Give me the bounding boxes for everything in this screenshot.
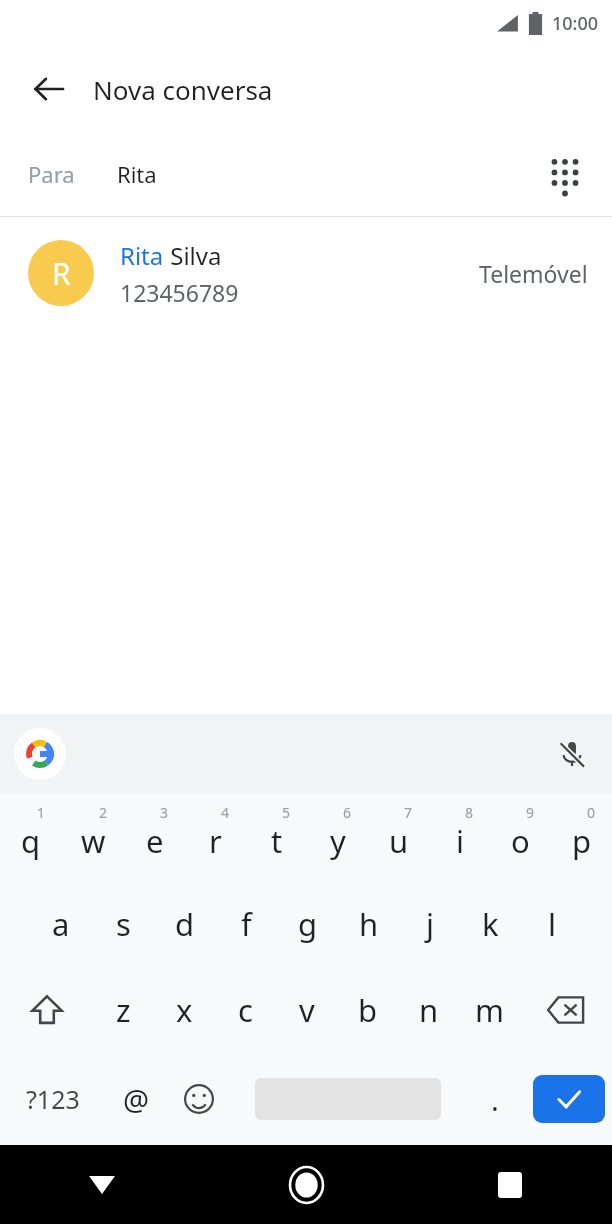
- button[interactable]: b: [337, 967, 398, 1053]
- staticText: g: [298, 903, 318, 945]
- staticText: 9: [526, 803, 535, 822]
- staticText: h: [359, 903, 379, 945]
- staticText: m: [475, 989, 504, 1031]
- button[interactable]: c: [215, 967, 276, 1053]
- staticText: 1: [37, 803, 46, 822]
- staticText: k: [482, 903, 499, 945]
- button[interactable]: Send: [526, 1053, 612, 1145]
- button[interactable]: 8: [429, 793, 490, 881]
- button[interactable]: d: [154, 881, 216, 967]
- staticText: d: [175, 903, 195, 945]
- button[interactable]: v: [276, 967, 337, 1053]
- button[interactable]: f: [216, 881, 277, 967]
- staticText: x: [176, 989, 193, 1031]
- staticText: o: [511, 820, 530, 862]
- button[interactable]: .: [464, 1053, 526, 1145]
- staticText: u: [389, 820, 409, 862]
- staticText: j: [426, 903, 434, 945]
- staticText: Rita: [117, 159, 157, 189]
- button[interactable]: Back: [20, 60, 78, 118]
- button[interactable]: m: [459, 967, 520, 1053]
- staticText: a: [52, 903, 70, 945]
- button[interactable]: n: [398, 967, 459, 1053]
- button[interactable]: Google: [14, 728, 66, 780]
- button[interactable]: j: [399, 881, 460, 967]
- staticText: 10:00: [552, 11, 599, 36]
- staticText: 4: [221, 803, 230, 822]
- staticText: y: [330, 820, 346, 862]
- staticText: c: [238, 989, 253, 1031]
- staticText: p: [572, 820, 592, 862]
- button[interactable]: 3: [124, 793, 185, 881]
- button[interactable]: 9: [490, 793, 551, 881]
- staticText: .: [491, 1080, 499, 1119]
- staticText: z: [116, 989, 131, 1031]
- staticText: 8: [465, 803, 474, 822]
- staticText: 123456789: [120, 277, 239, 308]
- staticText: n: [419, 989, 439, 1031]
- button[interactable]: @: [105, 1053, 167, 1145]
- staticText: Para: [28, 159, 75, 189]
- staticText: t: [271, 820, 283, 862]
- button[interactable]: 6: [307, 793, 368, 881]
- button[interactable]: Backspace: [520, 967, 612, 1053]
- staticText: q: [21, 820, 41, 862]
- button[interactable]: Home: [204, 1145, 408, 1224]
- staticText: 5: [282, 803, 291, 822]
- staticText: 7: [404, 803, 413, 822]
- button[interactable]: g: [277, 881, 338, 967]
- staticText: b: [358, 989, 378, 1031]
- button[interactable]: a: [30, 881, 92, 967]
- button[interactable]: 5: [246, 793, 307, 881]
- button[interactable]: Shift: [0, 967, 93, 1053]
- button[interactable]: Space: [231, 1053, 464, 1145]
- button[interactable]: ?123: [0, 1053, 105, 1145]
- button[interactable]: 7: [368, 793, 429, 881]
- staticText: ?123: [26, 1082, 80, 1116]
- button[interactable]: 2: [62, 793, 124, 881]
- button[interactable]: x: [154, 967, 215, 1053]
- staticText: 3: [160, 803, 169, 822]
- staticText: Rita: [120, 239, 164, 272]
- staticText: 2: [99, 803, 108, 822]
- staticText: f: [241, 903, 252, 945]
- staticText: v: [299, 989, 315, 1031]
- button[interactable]: 0: [551, 793, 612, 881]
- staticText: Nova conversa: [93, 72, 273, 107]
- button[interactable]: 4: [185, 793, 246, 881]
- button[interactable]: k: [460, 881, 521, 967]
- button[interactable]: l: [521, 881, 582, 967]
- staticText: r: [209, 820, 222, 862]
- button[interactable]: s: [92, 881, 154, 967]
- button[interactable]: Emoji: [167, 1053, 231, 1145]
- button[interactable]: h: [338, 881, 399, 967]
- staticText: s: [116, 903, 131, 945]
- staticText: Telemóvel: [479, 258, 588, 289]
- staticText: 6: [343, 803, 352, 822]
- button[interactable]: Back: [0, 1145, 204, 1224]
- staticText: @: [123, 1080, 150, 1119]
- button[interactable]: Recent apps: [408, 1145, 612, 1224]
- staticText: e: [146, 820, 164, 862]
- staticText: Silva: [164, 239, 222, 272]
- staticText: 0: [587, 803, 596, 822]
- button[interactable]: z: [93, 967, 154, 1053]
- staticText: l: [548, 903, 556, 945]
- button[interactable]: Voice input off: [546, 728, 598, 780]
- button[interactable]: Dial pad: [536, 145, 594, 203]
- staticText: R: [52, 253, 71, 294]
- button[interactable]: 1: [0, 793, 62, 881]
- button[interactable]: R: [0, 217, 612, 329]
- staticText: w: [81, 820, 106, 862]
- staticText: i: [456, 820, 464, 862]
